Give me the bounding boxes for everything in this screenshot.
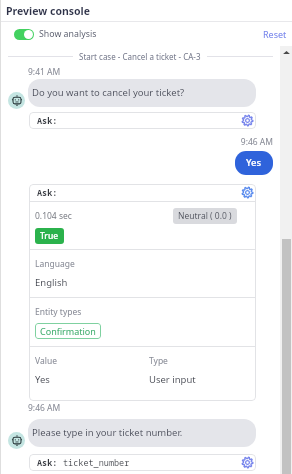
button[interactable]: Yes (235, 151, 273, 175)
staticText: Entity types (35, 306, 82, 318)
staticText: Ask: (37, 457, 58, 469)
staticText: 9:46 AM (240, 136, 273, 148)
staticText: Confirmation (40, 325, 96, 337)
staticText: Yes (35, 373, 50, 386)
button[interactable]: Reset (263, 28, 287, 40)
staticText: English (35, 276, 68, 289)
staticText: Value (35, 355, 57, 367)
staticText: 0.104 sec (35, 210, 72, 222)
staticText: Language (35, 258, 75, 270)
staticText: Preview console (6, 4, 91, 18)
staticText: Start case - Cancel a ticket - CA-3 (79, 51, 201, 62)
staticText: Yes (246, 156, 262, 169)
staticText: Reset (263, 28, 287, 40)
staticText: ticket_number (63, 457, 130, 469)
staticText: User input (149, 373, 196, 386)
button[interactable]: Ask: (29, 454, 256, 471)
staticText: True (40, 230, 59, 242)
other: Settings (242, 187, 253, 198)
staticText: Ask: (37, 115, 58, 127)
staticText: Ask: (37, 187, 58, 199)
other: Settings (242, 457, 253, 468)
staticText: 9:46 AM (28, 402, 61, 414)
button[interactable]: Ask: (29, 112, 256, 129)
staticText: Please type in your ticket number. (32, 426, 183, 439)
staticText: 9:41 AM (28, 66, 61, 77)
staticText: Do you want to cancel your ticket? (32, 86, 185, 99)
staticText: Neutral ( 0.0 ) (178, 210, 232, 222)
staticText: Show analysis (39, 28, 97, 40)
other: Settings (242, 115, 253, 126)
button[interactable]: Show analysis (14, 28, 97, 40)
staticText: Type (149, 355, 168, 367)
